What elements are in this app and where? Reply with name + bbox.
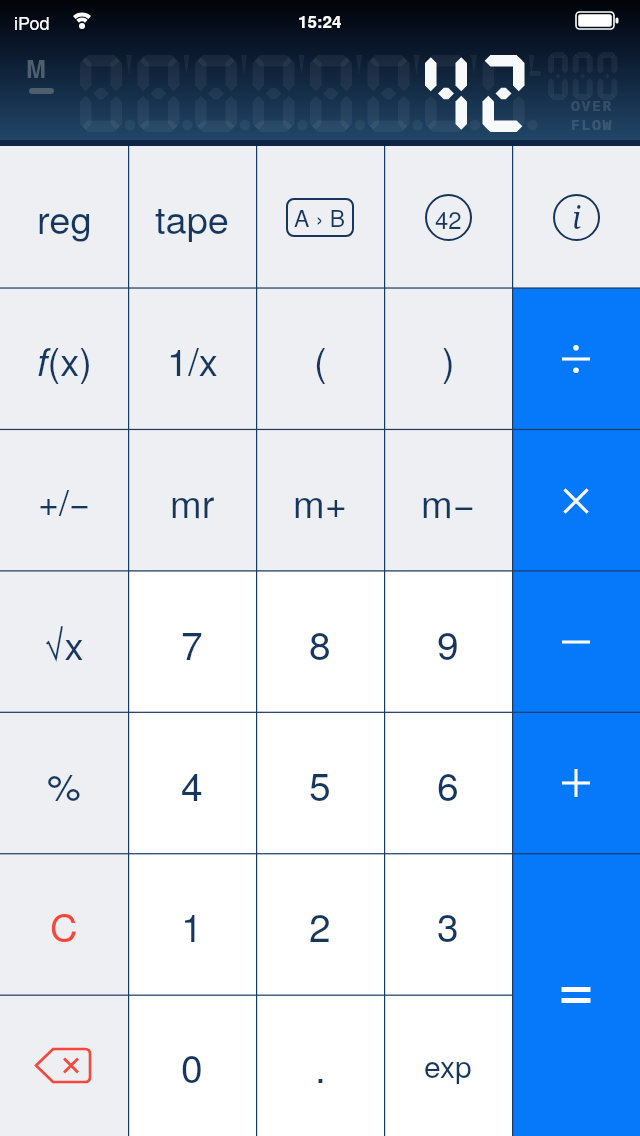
- staticText: C: [50, 898, 78, 952]
- staticText: 3: [437, 897, 459, 953]
- staticText: .: [315, 1038, 326, 1094]
- staticText: 6: [437, 756, 459, 812]
- button[interactable]: m+: [256, 430, 384, 572]
- button[interactable]: ): [384, 288, 512, 430]
- staticText: 42: [435, 201, 462, 235]
- button[interactable]: [512, 712, 640, 853]
- button[interactable]: 9: [384, 572, 512, 713]
- staticText: m−: [421, 474, 475, 528]
- staticText: exp: [424, 1044, 472, 1087]
- button[interactable]: 3: [384, 854, 512, 995]
- button[interactable]: exp: [384, 995, 512, 1136]
- staticText: M: [26, 51, 46, 85]
- staticText: 4: [181, 756, 203, 812]
- button[interactable]: [512, 430, 640, 571]
- staticText: %: [47, 757, 81, 811]
- button[interactable]: [512, 288, 640, 430]
- button[interactable]: 6: [384, 713, 512, 854]
- button[interactable]: √x: [0, 572, 128, 713]
- button[interactable]: tape: [128, 146, 256, 288]
- staticText: ): [442, 332, 455, 386]
- button[interactable]: 8: [256, 572, 384, 713]
- button[interactable]: i: [512, 146, 640, 288]
- button[interactable]: 1: [128, 854, 256, 995]
- button[interactable]: (: [256, 288, 384, 430]
- button[interactable]: m−: [384, 430, 512, 572]
- button[interactable]: 0: [128, 995, 256, 1136]
- staticText: f(x): [37, 332, 92, 386]
- staticText: m+: [293, 474, 347, 528]
- button[interactable]: 1/x: [128, 288, 256, 430]
- button[interactable]: [512, 853, 640, 1136]
- button[interactable]: mr: [128, 430, 256, 572]
- staticText: reg: [37, 190, 92, 244]
- button[interactable]: 42: [384, 146, 512, 288]
- staticText: 1/x: [167, 332, 218, 386]
- staticText: 15:24: [298, 9, 342, 33]
- staticText: (: [314, 332, 327, 386]
- button[interactable]: 4: [128, 713, 256, 854]
- staticText: OVER: [571, 95, 614, 115]
- button[interactable]: [0, 995, 128, 1136]
- button[interactable]: %: [0, 713, 128, 854]
- button[interactable]: f(x): [0, 288, 128, 430]
- button[interactable]: C: [0, 854, 128, 995]
- staticText: 9: [437, 615, 459, 671]
- staticText: +/−: [38, 475, 91, 527]
- button[interactable]: +/−: [0, 430, 128, 572]
- staticText: A › B: [294, 201, 346, 234]
- staticText: 5: [309, 756, 331, 812]
- staticText: FLOW: [571, 114, 614, 134]
- button[interactable]: .: [256, 995, 384, 1136]
- button[interactable]: [512, 571, 640, 712]
- staticText: 1: [181, 897, 203, 953]
- staticText: 7: [181, 615, 203, 671]
- staticText: √x: [44, 616, 84, 670]
- button[interactable]: reg: [0, 146, 128, 288]
- staticText: mr: [170, 474, 215, 528]
- staticText: 2: [309, 897, 331, 953]
- button[interactable]: 2: [256, 854, 384, 995]
- staticText: 8: [309, 615, 331, 671]
- staticText: iPod: [14, 9, 50, 35]
- button[interactable]: 5: [256, 713, 384, 854]
- staticText: 0: [181, 1038, 203, 1094]
- button[interactable]: A › B: [256, 146, 384, 288]
- staticText: i: [572, 197, 582, 238]
- staticText: tape: [155, 190, 229, 244]
- button[interactable]: 7: [128, 572, 256, 713]
